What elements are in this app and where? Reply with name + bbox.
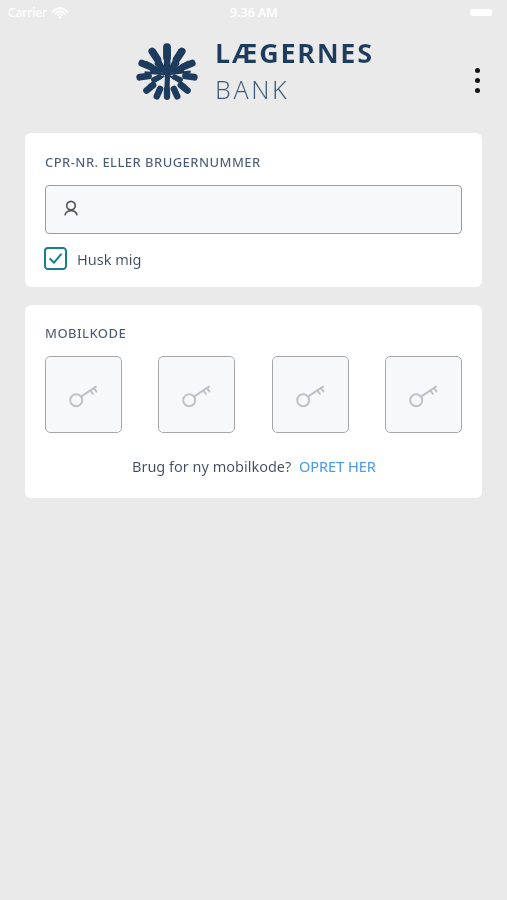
button[interactable]: Mobilkode digit — [158, 356, 235, 433]
button[interactable]: OPRET HER — [299, 456, 376, 476]
staticText: BANK — [215, 72, 290, 106]
staticText: Carrier — [8, 4, 48, 20]
staticText: LÆGERNES — [215, 34, 374, 71]
button[interactable] — [45, 185, 462, 234]
staticText: Brug for ny mobilkode? — [132, 456, 292, 476]
staticText: 9.36 AM — [230, 4, 278, 21]
button[interactable]: Mobilkode digit — [272, 356, 349, 433]
staticText: CPR-NR. ELLER BRUGERNUMMER — [45, 153, 261, 171]
staticText: OPRET HER — [299, 456, 376, 476]
button[interactable]: Mobilkode digit — [385, 356, 462, 433]
staticText: MOBILKODE — [45, 324, 127, 342]
button[interactable]: Husk mig — [45, 248, 142, 269]
button[interactable]: Mobilkode digit — [45, 356, 122, 433]
staticText: Husk mig — [77, 249, 142, 269]
button[interactable]: More options — [459, 62, 495, 98]
